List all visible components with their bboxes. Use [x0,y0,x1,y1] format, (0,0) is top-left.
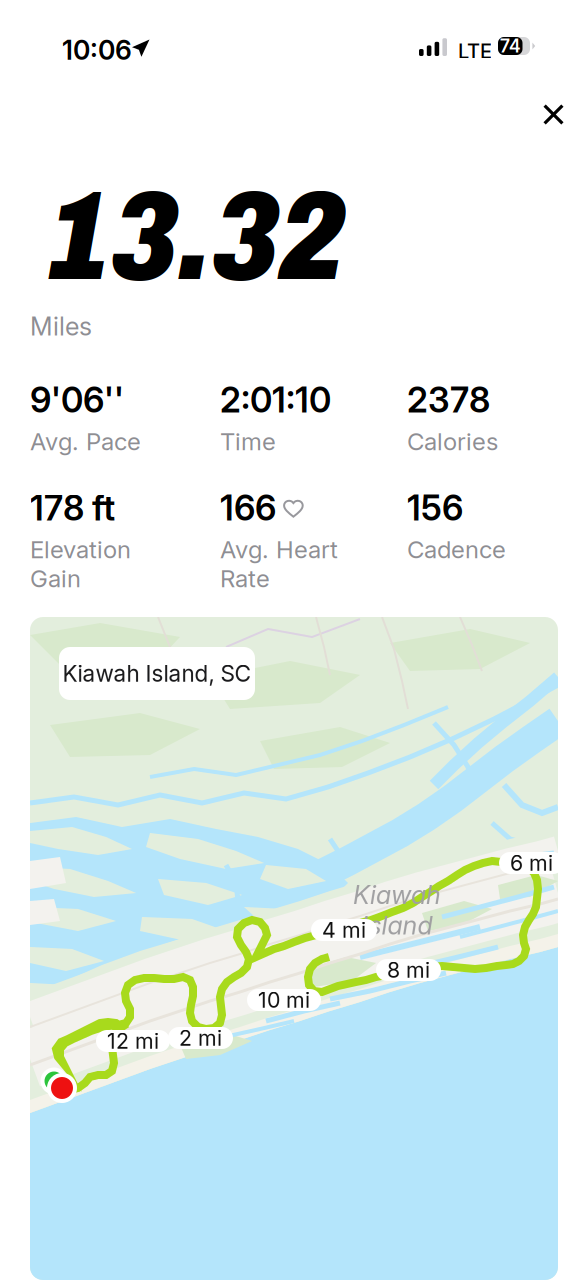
staticText: 8 mi [387,957,430,983]
staticText: 74 [500,35,521,57]
staticText: 6 mi [510,850,553,876]
staticText: Island [361,910,432,941]
staticText: 12 mi [107,1028,159,1054]
staticText: LTE [458,39,492,63]
staticText: Kiawah Island, SC [62,660,251,687]
staticText: 9'06'' [30,379,124,421]
staticText: Calories [407,427,498,456]
staticText: Avg. Pace [30,427,141,456]
staticText: 10 mi [258,987,310,1013]
staticText: 13.32 [49,169,345,305]
staticText: 4 mi [322,917,366,943]
staticText: 2378 [407,379,490,421]
staticText: Elevation Gain [30,535,131,593]
button[interactable]: Close [527,88,580,141]
staticText: 178 ft [30,487,115,529]
staticText: 166 [220,487,276,529]
staticText: 2 mi [179,1025,222,1051]
staticText: 2:01:10 [220,379,331,421]
staticText: Cadence [407,535,506,564]
staticText: 156 [407,487,463,529]
staticText: Avg. Heart Rate [220,535,338,593]
staticText: Kiawah [353,879,441,910]
staticText: 10:06 [62,34,132,66]
staticText: Miles [30,311,92,342]
staticText: Time [220,427,276,456]
